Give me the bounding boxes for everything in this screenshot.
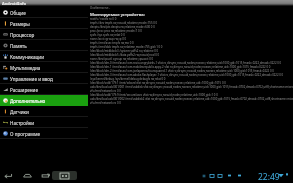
staticText: /dev/block/vold/179:1 /mnt/sdcard vfat r… (90, 81, 226, 85)
staticText: /dev/block/mtdblock3 /system yaffs2 ro,r… (90, 49, 159, 53)
staticText: Расширение (10, 87, 38, 93)
staticText: proc /proc proc rw,relatime,mode=7 0 0 (90, 29, 142, 33)
button[interactable]: Коммуникации (0, 51, 88, 62)
button[interactable]: Keyboard (52, 171, 77, 180)
button[interactable]: Back (2, 170, 15, 181)
staticText: /dev/block/dm-3 /mnt/asec/com.adobe.flas… (90, 73, 284, 77)
staticText: Память (10, 43, 27, 49)
staticText: none /acct cgroup rw,cp 0 0 (90, 37, 127, 41)
staticText: Размеры (10, 21, 30, 27)
button[interactable]: Управление и ввод (0, 73, 88, 84)
staticText: Мультимедиа (10, 65, 41, 71)
staticText: tmpfs /dev tmpfs rw,nosuid,relatime,mode… (90, 21, 158, 25)
staticText: /dev/block/vold/179:9 /mnt/secure/asec v… (90, 93, 218, 97)
staticText: tmpfs /mnt/obb tmpfs rw,relatime,mode=75… (90, 45, 163, 49)
staticText: vfs:/mnt/network ro 0 0 (90, 89, 121, 93)
button[interactable]: Процессор (0, 29, 88, 40)
button[interactable]: Home (21, 170, 34, 181)
staticText: usb:/dev/bus/usb/001/002 /mnt/usbdisk2 v… (90, 97, 293, 101)
staticText: AndroidInfo (2, 1, 27, 6)
staticText: sysfs /sys sysfs rw,relat 0 0 (90, 33, 125, 37)
staticText: Общие (10, 10, 26, 16)
button[interactable]: О программе (0, 128, 88, 139)
button[interactable]: Общие (0, 7, 88, 18)
staticText: rootfs / rootfs ro 0 0 (90, 17, 117, 21)
staticText: 22:49 (258, 171, 280, 183)
button[interactable]: Расширение (0, 84, 88, 95)
staticText: /dev/block/dm-1 /mnt/asec/com.mobilesrep… (90, 65, 271, 69)
staticText: О программе (10, 131, 40, 137)
staticText: Процессор (10, 32, 35, 38)
button[interactable]: Мультимедиа (0, 62, 88, 73)
staticText: /dev/block/dm-2 /mnt/asec/com.joelapenna… (90, 69, 274, 73)
button[interactable]: Дополнительно (0, 95, 88, 106)
button[interactable]: Настройки (0, 117, 88, 128)
staticText: Настройки (10, 120, 35, 126)
staticText: Датчики (10, 109, 29, 115)
staticText: vfs:/mnt/network ro 0 0 (90, 101, 121, 105)
staticText: none /dev/cpuctl cgroup rw,relatime,cpua… (90, 57, 154, 61)
button[interactable]: Память (0, 40, 88, 51)
staticText: Управление и ввод (10, 76, 53, 82)
staticText: /sys/kernel/debug /sys/kernel/debug debu… (90, 77, 166, 81)
staticText: /dev/block/dm-0 /mnt/asec/com.rovio.angr… (90, 61, 282, 65)
button[interactable]: Recent apps (39, 170, 52, 181)
staticText: tmpfs /mnt/asec tmpfs rw,mo 0 0 (90, 41, 134, 45)
staticText: usb:/dev/bus/usb/001/001 /mnt/usbdisk vf… (90, 85, 293, 89)
staticText: Коммуникации (10, 54, 44, 60)
staticText: Особенности: - (90, 6, 111, 10)
staticText: /dev/block/mtdblock5 /data yaffs2 rw,nos… (90, 53, 160, 57)
button[interactable]: Датчики (0, 106, 88, 117)
button[interactable]: Размеры (0, 18, 88, 29)
staticText: devpts /dev/pts devpts rw,relatime,mode=… (90, 25, 155, 29)
staticText: Монтируемые устройства: (90, 11, 145, 17)
staticText: Дополнительно (10, 98, 46, 104)
